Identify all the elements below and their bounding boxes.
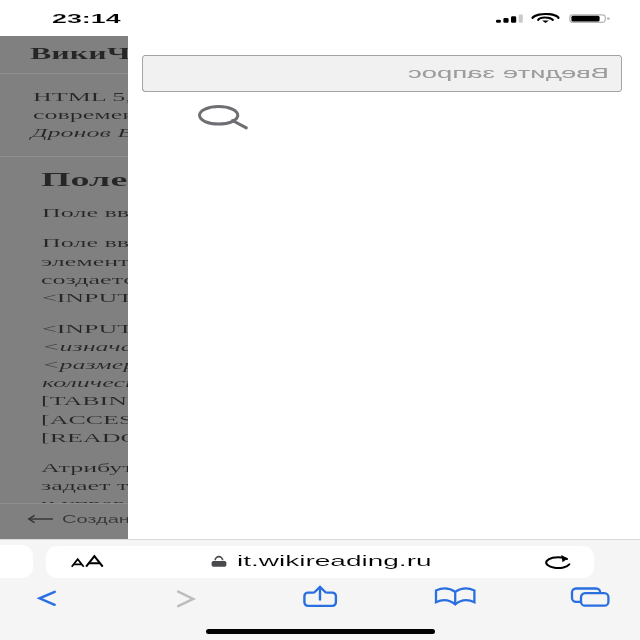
staticText: задает тип поля ввода: [41, 478, 128, 492]
staticText: Поле ввода текста —: [42, 205, 128, 219]
button[interactable]: Bookmarks: [430, 581, 480, 613]
staticText: создается с помощью тега: [41, 272, 128, 286]
button[interactable]: Tabs: [566, 581, 616, 613]
staticText: <INPUT> следующего вида:: [42, 290, 128, 304]
staticText: <изначальное значение>: [42, 339, 128, 353]
staticText: [TABINDEX=<номер>]: [41, 393, 128, 407]
staticText: [READONLY]>: [41, 430, 128, 444]
staticText: современные средства: [33, 107, 128, 121]
button[interactable]: Page settings: [46, 546, 594, 578]
staticText: [ACCESSKEY=<символ>]: [41, 412, 128, 426]
staticText: элемент управления. Он: [41, 254, 128, 268]
button[interactable]: Reload page: [540, 548, 572, 576]
button[interactable]: Back: [30, 583, 66, 611]
button[interactable]: Page settings: [64, 548, 106, 576]
staticText: Дронов Владимир: [31, 125, 128, 139]
staticText: it.wikireading.ru: [237, 553, 432, 568]
staticText: Атрибут type тега: [41, 460, 128, 474]
staticText: количество символов>: [42, 375, 128, 389]
button[interactable]: Share: [298, 581, 344, 613]
staticText: и управляет его: [41, 496, 128, 503]
staticText: Создано в интеллектуальной: [62, 514, 128, 525]
staticText: Поле ввода текста: [41, 169, 128, 190]
staticText: <INPUT type="text": [42, 321, 128, 335]
staticText: ВикиЧтение: [30, 44, 128, 61]
button[interactable]: Введите запрос: [142, 55, 622, 92]
staticText: Введите запрос: [407, 65, 609, 80]
button[interactable]: Forward: [168, 583, 204, 611]
staticText: Поле ввода текста — самый: [42, 235, 128, 249]
staticText: HTML 5, CSS 3 и JavaScript: [33, 89, 128, 103]
staticText: <размер поля в: [42, 357, 128, 371]
staticText: 23:14: [52, 11, 121, 26]
button[interactable]: Search: [198, 105, 251, 131]
